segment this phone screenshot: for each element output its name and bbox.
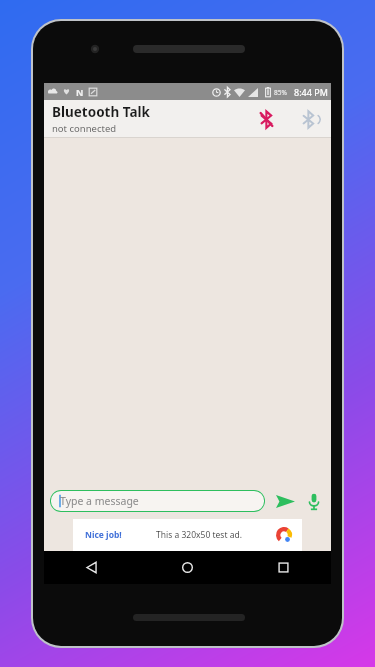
staticText: This a 320x50 test ad. <box>156 529 242 541</box>
button[interactable]: Recent apps <box>235 551 331 584</box>
button[interactable]: Disconnect Bluetooth <box>253 106 279 132</box>
button[interactable]: Nice job! <box>73 519 302 551</box>
button[interactable]: Back <box>44 551 139 584</box>
button[interactable]: Type a message <box>50 490 265 512</box>
button[interactable]: Home <box>139 551 235 584</box>
staticText: Bluetooth Talk <box>52 103 150 121</box>
staticText: Type a message <box>60 494 139 508</box>
button[interactable]: Bluetooth settings <box>295 106 321 132</box>
staticText: 8:44 PM <box>294 86 328 98</box>
staticText: 85% <box>274 88 287 97</box>
button[interactable]: Send <box>273 488 297 514</box>
staticText: not connected <box>52 122 117 135</box>
button[interactable]: Voice input <box>303 488 325 514</box>
staticText: N <box>76 86 84 97</box>
staticText: Nice job! <box>85 529 122 541</box>
